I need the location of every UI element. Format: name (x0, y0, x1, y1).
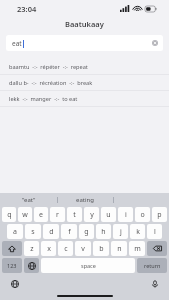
button[interactable]: y (84, 207, 99, 222)
button[interactable]: e (34, 207, 48, 222)
staticText: 123 (7, 262, 17, 269)
button[interactable] (113, 193, 169, 206)
staticText: x (47, 244, 51, 254)
staticText: eat (12, 39, 22, 48)
button[interactable]: i (118, 207, 133, 222)
button[interactable]: s (25, 224, 41, 239)
staticText: d (49, 227, 54, 237)
staticText: p (157, 210, 162, 220)
button[interactable]: eat (6, 35, 163, 51)
staticText: u (106, 210, 111, 220)
button[interactable]: return (137, 258, 167, 273)
staticText: 23:04 (17, 4, 37, 14)
staticText: f (68, 227, 71, 237)
button[interactable]: b (93, 241, 109, 256)
staticText: k (136, 227, 140, 237)
staticText: Baatukaay (65, 19, 104, 29)
staticText: q (7, 210, 12, 220)
staticText: g (84, 227, 89, 237)
button[interactable]: m (129, 241, 145, 256)
button[interactable]: n (111, 241, 127, 256)
button[interactable]: z (24, 241, 39, 256)
button[interactable]: dallu b- -:- récréation -:- break (0, 75, 169, 91)
button[interactable]: Emoji (24, 258, 39, 273)
button[interactable]: l (147, 224, 162, 239)
staticText: dallu b- -:- récréation -:- break (9, 79, 93, 87)
button[interactable]: w (18, 207, 32, 222)
staticText: i (125, 210, 127, 220)
button[interactable]: Emoji keyboard (10, 279, 19, 288)
staticText: o (140, 210, 145, 220)
staticText: h (101, 227, 106, 237)
button[interactable]: v (75, 241, 91, 256)
staticText: m (134, 244, 141, 254)
staticText: e (39, 210, 43, 220)
staticText: b (99, 244, 104, 254)
staticText: n (117, 244, 122, 254)
staticText: s (31, 227, 35, 237)
staticText: z (30, 244, 34, 254)
button[interactable]: q (2, 207, 16, 222)
staticText: return (144, 262, 161, 269)
staticText: lekk -:- manger -:- to eat (9, 95, 78, 103)
button[interactable]: 123 (2, 258, 22, 273)
staticText: w (22, 210, 28, 220)
button[interactable]: Shift (2, 241, 22, 256)
button[interactable]: u (101, 207, 116, 222)
button[interactable]: baamtu -:- répéter -:- repeat (0, 59, 169, 75)
button[interactable]: k (130, 224, 145, 239)
button[interactable]: p (152, 207, 167, 222)
button[interactable]: o (135, 207, 150, 222)
button[interactable]: Dictate (150, 279, 159, 288)
button[interactable]: "eat" (0, 193, 57, 206)
button[interactable]: eating (57, 193, 113, 206)
button[interactable]: Clear text (152, 40, 158, 46)
button[interactable]: h (96, 224, 111, 239)
staticText: a (13, 227, 17, 237)
staticText: eating (76, 196, 94, 204)
staticText: y (90, 210, 94, 220)
button[interactable]: t (67, 207, 82, 222)
button[interactable]: d (43, 224, 59, 239)
button[interactable]: x (41, 241, 56, 256)
button[interactable]: g (79, 224, 94, 239)
staticText: "eat" (22, 196, 36, 204)
button[interactable]: j (113, 224, 128, 239)
staticText: v (81, 244, 85, 254)
staticText: l (154, 227, 156, 237)
button[interactable]: a (7, 224, 23, 239)
staticText: space (81, 262, 96, 269)
staticText: baamtu -:- répéter -:- repeat (9, 63, 88, 71)
staticText: j (120, 227, 122, 237)
staticText: t (73, 210, 76, 220)
button[interactable]: Backspace (147, 241, 167, 256)
staticText: c (64, 244, 68, 254)
button[interactable]: space (41, 258, 135, 273)
button[interactable]: lekk -:- manger -:- to eat (0, 91, 169, 107)
button[interactable]: f (61, 224, 77, 239)
button[interactable]: r (50, 207, 65, 222)
button[interactable]: c (58, 241, 73, 256)
staticText: r (56, 210, 59, 220)
